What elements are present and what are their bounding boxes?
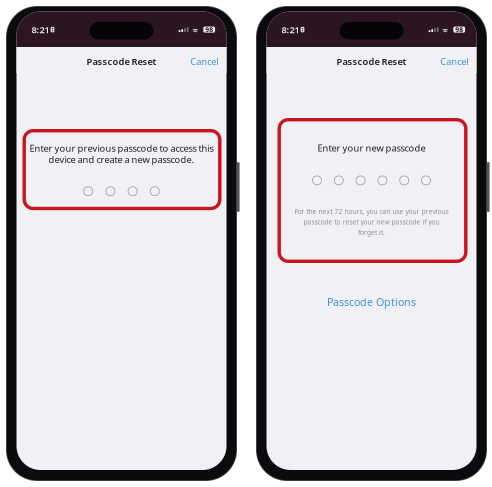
button[interactable]: Cancel <box>435 51 473 72</box>
staticText: 98 <box>455 25 463 34</box>
staticText: Passcode Reset <box>86 55 156 68</box>
staticText: 8:21 <box>281 23 299 36</box>
staticText: device and create a new passcode. <box>48 153 194 166</box>
staticText: Cancel <box>190 55 218 68</box>
button[interactable]: Cancel <box>185 51 223 72</box>
staticText: Passcode Reset <box>336 55 406 68</box>
button[interactable]: Passcode Options <box>321 291 422 313</box>
staticText: 98 <box>205 25 213 34</box>
staticText: forget it. <box>358 228 385 237</box>
staticText: For the next 72 hours, you can use your … <box>294 207 448 216</box>
staticText: Enter your new passcode <box>317 142 425 154</box>
staticText: Enter your previous passcode to access t… <box>29 142 213 154</box>
staticText: 8:21 <box>31 23 49 36</box>
staticText: passcode to reset your new passcode if y… <box>303 217 439 226</box>
staticText: Cancel <box>440 55 468 68</box>
staticText: Passcode Options <box>327 295 416 309</box>
